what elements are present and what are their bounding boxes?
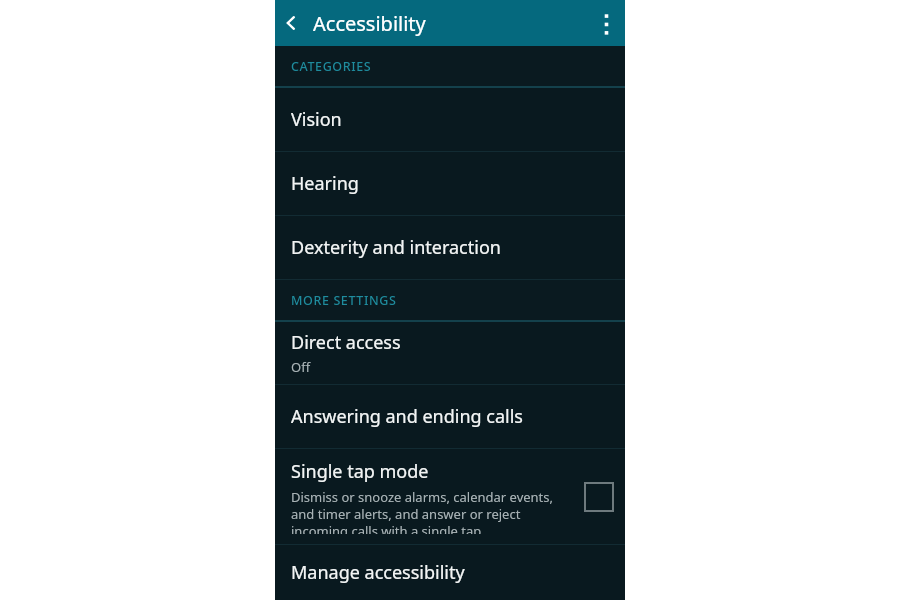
button[interactable]: Vision — [275, 88, 625, 151]
button[interactable]: Direct access — [275, 322, 625, 384]
button[interactable]: Single tap mode — [275, 449, 625, 544]
button[interactable]: Dexterity and interaction — [275, 216, 625, 279]
staticText: Off — [291, 358, 311, 376]
button[interactable]: Manage accessibility — [275, 545, 625, 600]
button[interactable]: Hearing — [275, 152, 625, 215]
button[interactable]: Back — [275, 0, 307, 46]
staticText: CATEGORIES — [291, 58, 372, 75]
staticText: Dexterity and interaction — [291, 235, 501, 260]
staticText: Vision — [291, 107, 342, 132]
button[interactable]: Single tap mode checkbox — [573, 449, 625, 544]
staticText: Manage accessibility — [291, 560, 465, 585]
staticText: Accessibility — [313, 10, 587, 37]
button[interactable]: More options — [587, 0, 625, 46]
staticText: Single tap mode — [291, 459, 429, 484]
staticText: Answering and ending calls — [291, 404, 523, 429]
staticText: Hearing — [291, 171, 359, 196]
staticText: Dismiss or snooze alarms, calendar event… — [291, 488, 554, 534]
button[interactable]: Answering and ending calls — [275, 385, 625, 448]
staticText: MORE SETTINGS — [291, 292, 397, 309]
staticText: Direct access — [291, 330, 401, 355]
